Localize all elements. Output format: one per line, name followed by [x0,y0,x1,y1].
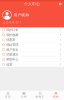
staticText: 设置 [6,62,12,66]
staticText: 购物车 [35,95,44,98]
button[interactable]: 账户安全 [0,47,64,52]
button[interactable]: 首页 [0,90,16,100]
button[interactable]: 分类 [16,90,32,100]
button[interactable]: 消息通知 [0,52,64,57]
staticText: 我的收藏 [6,33,18,37]
staticText: 分类 [21,95,27,98]
button[interactable]: 优惠券 [0,37,64,42]
button[interactable]: 帮助中心 [0,57,64,62]
staticText: 个人中心 [24,1,40,6]
staticText: 我的 [53,95,59,98]
button[interactable]: 设置 [0,62,64,67]
staticText: 我的订单 [6,28,18,32]
button[interactable]: 购物车 [32,90,48,100]
staticText: 帮助中心 [6,57,18,61]
staticText: 优惠券 [6,38,15,42]
button[interactable]: 我的 [48,90,64,100]
staticText: 账户安全 [6,48,18,52]
staticText: 用户昵称 [14,13,30,17]
staticText: 地址管理 [6,43,18,47]
staticText: 消息通知 [6,52,18,56]
button[interactable]: 地址管理 [0,42,64,47]
staticText: 首页 [5,95,11,98]
button[interactable]: 我的订单 [0,28,64,32]
staticText: 会员等级 LV.1 [3,21,21,24]
button[interactable]: 我的收藏 [0,32,64,37]
